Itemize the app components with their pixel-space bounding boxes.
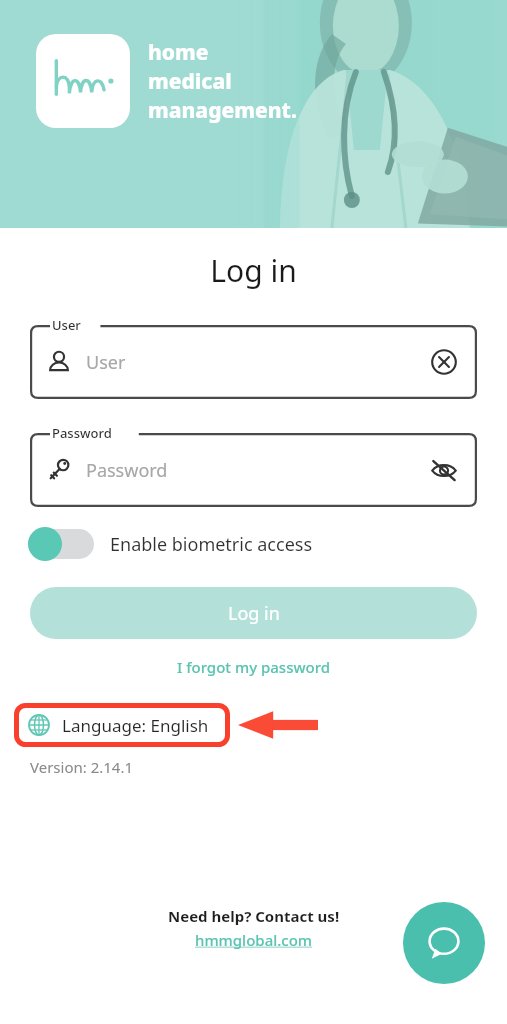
button[interactable]: hmmglobal.com xyxy=(195,930,313,950)
staticText: Need help? Contact us! xyxy=(168,906,340,926)
staticText: medical xyxy=(148,67,232,96)
staticText: Language: English xyxy=(62,714,209,737)
button[interactable]: Open chat support xyxy=(403,902,485,984)
button[interactable]: Log in xyxy=(30,587,477,639)
staticText: Password xyxy=(52,424,112,442)
staticText: User xyxy=(52,316,81,334)
staticText: management. xyxy=(148,96,297,125)
button[interactable]: Show password xyxy=(427,453,461,487)
staticText: Enable biometric access xyxy=(110,532,313,557)
button[interactable]: Password xyxy=(30,433,477,507)
staticText: Password xyxy=(86,458,427,483)
staticText: Version: 2.14.1 xyxy=(30,757,134,777)
button[interactable]: I forgot my password xyxy=(0,657,507,677)
staticText: User xyxy=(86,350,427,375)
button[interactable]: Language: English xyxy=(14,703,230,747)
staticText: Log in xyxy=(228,601,280,626)
button[interactable]: User xyxy=(30,325,477,399)
button[interactable]: Clear user xyxy=(427,345,461,379)
staticText: home xyxy=(148,38,209,67)
staticText: Log in xyxy=(0,250,507,291)
button[interactable]: Enable biometric access xyxy=(28,527,479,561)
